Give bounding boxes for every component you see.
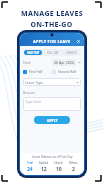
staticText: 26 Apr 2024 [54,60,74,65]
button[interactable]: First Half [23,70,52,74]
button[interactable]: Type here [23,97,81,111]
staticText: Leave Type [25,80,44,85]
staticText: Type here [25,99,42,104]
staticText: MANAGE LEAVES [21,9,83,19]
staticText: Closed [54,161,63,165]
button[interactable]: 26 Apr 2024 [54,60,74,65]
staticText: Leave Balance as of First Day [32,155,73,159]
staticText: 2 [72,166,75,173]
button[interactable]: FULL DAY [44,50,61,55]
button[interactable]: APPLY [34,116,70,124]
staticText: Availed [39,161,49,165]
button[interactable]: LONGER [63,50,80,55]
staticText: APPLY [47,118,58,123]
staticText: Second Half [58,70,76,74]
staticText: ON-THE-GO [30,20,73,30]
staticText: Date [23,60,31,65]
staticText: 12 [41,166,47,173]
staticText: LONGER [66,51,77,55]
button[interactable]: Total [23,161,37,173]
button[interactable]: Second Half [52,70,81,74]
button[interactable]: Close [76,39,81,44]
staticText: 24 [27,166,33,173]
staticText: Total [27,161,34,165]
staticText: Reason [23,90,36,95]
staticText: APPLY FOR LEAVE [33,39,71,44]
staticText: 10 [56,166,62,173]
button[interactable]: Others [66,161,81,173]
button[interactable]: HALF DAY [24,50,42,55]
staticText: HALF DAY [27,51,40,55]
button[interactable]: Closed [51,161,66,173]
staticText: Others [69,161,78,165]
staticText: First Half [29,70,43,74]
staticText: FULL DAY [47,51,59,55]
button[interactable]: Leave Type [23,78,81,86]
button[interactable]: Availed [37,161,51,173]
